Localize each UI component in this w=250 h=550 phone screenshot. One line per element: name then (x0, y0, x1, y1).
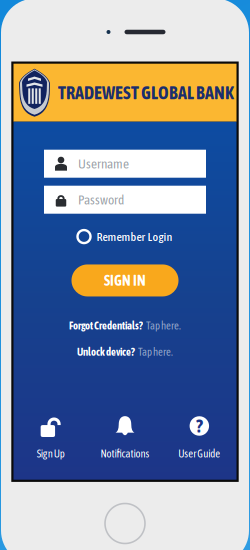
staticText: SIGN IN (104, 272, 146, 289)
button[interactable]: Password (44, 186, 206, 214)
button[interactable]: Username (44, 150, 206, 178)
button[interactable]: ? (162, 414, 236, 460)
button[interactable]: Sign Up (13, 414, 88, 460)
staticText: ? (196, 416, 202, 436)
button[interactable]: Forgot Credentials? (65, 316, 185, 335)
staticText: Tap here. (138, 346, 173, 358)
button[interactable]: Unlock device? (73, 343, 177, 361)
staticText: Username (78, 156, 129, 171)
staticText: Forgot Credentials? (69, 319, 143, 332)
staticText: Remember Login (96, 230, 172, 243)
staticText: Notifications (100, 447, 149, 460)
button[interactable]: Remember Login (77, 227, 172, 246)
staticText: Tap here. (146, 319, 181, 332)
button[interactable]: SIGN IN (71, 264, 178, 296)
staticText: Unlock device? (77, 346, 135, 358)
staticText: User Guide (178, 447, 220, 460)
staticText: TRADEWEST GLOBAL BANK (58, 82, 234, 103)
staticText: Sign Up (37, 447, 65, 460)
staticText: Password (78, 192, 124, 207)
button[interactable]: Notifications (88, 414, 162, 460)
